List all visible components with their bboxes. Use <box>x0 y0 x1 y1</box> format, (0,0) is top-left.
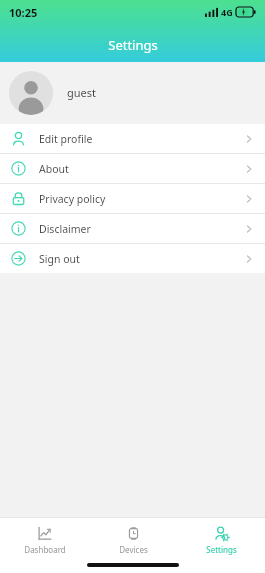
staticText: Edit profile <box>39 132 93 146</box>
staticText: Settings <box>108 36 158 54</box>
button[interactable]: About <box>0 154 265 183</box>
staticText: Sign out <box>39 252 80 266</box>
staticText: guest <box>67 85 97 100</box>
button[interactable]: Privacy policy <box>0 184 265 213</box>
staticText: 4G <box>221 6 233 18</box>
button[interactable]: Sign out <box>0 244 265 273</box>
button[interactable]: Settings <box>177 522 265 555</box>
staticText: Settings <box>206 544 237 555</box>
staticText: Devices <box>119 544 148 555</box>
button[interactable]: Edit profile <box>0 124 265 153</box>
button[interactable]: Dashboard <box>0 522 89 555</box>
button[interactable]: Devices <box>89 522 177 555</box>
button[interactable]: guest <box>0 62 265 123</box>
staticText: 10:25 <box>9 5 38 20</box>
staticText: Privacy policy <box>39 192 106 206</box>
staticText: Disclaimer <box>39 222 91 236</box>
staticText: Dashboard <box>24 544 66 555</box>
button[interactable]: Disclaimer <box>0 214 265 243</box>
staticText: About <box>39 162 69 176</box>
